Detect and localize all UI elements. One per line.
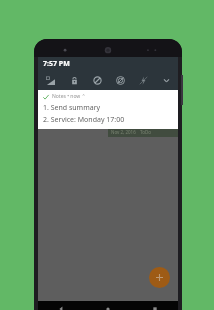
button[interactable]: Rotation lock [62, 70, 86, 90]
staticText: Service [41, 87, 68, 98]
staticText: ToDo [140, 129, 151, 135]
staticText: My car [70, 120, 85, 126]
button[interactable]: Back [38, 301, 84, 310]
staticText: 2. Service: Monday 17:00 [43, 115, 125, 125]
staticText: 7:57 PM [43, 59, 70, 69]
button[interactable]: Flashlight [132, 70, 155, 90]
staticText: Monday 17:00 [41, 98, 95, 109]
staticText: Water [111, 109, 134, 120]
button[interactable]: Home [84, 301, 131, 310]
button[interactable]: Expand [155, 70, 178, 90]
button[interactable]: Bread [108, 85, 178, 137]
button[interactable]: Notes • now ⌃ [38, 90, 178, 129]
staticText: Nov 2, 2016 [111, 129, 136, 135]
staticText: Bread [111, 87, 134, 98]
staticText: Notes • now ⌃ [52, 93, 86, 100]
staticText: Nov 2, 2016 [41, 120, 66, 126]
button[interactable]: Wi-Fi [38, 70, 62, 90]
button[interactable]: Brightness [109, 70, 132, 90]
button[interactable]: Service [38, 85, 108, 128]
button[interactable]: Recents [131, 301, 178, 310]
button[interactable]: New note [149, 267, 170, 288]
staticText: 1. Send summary [43, 103, 101, 113]
button[interactable]: Do not disturb [86, 70, 109, 90]
